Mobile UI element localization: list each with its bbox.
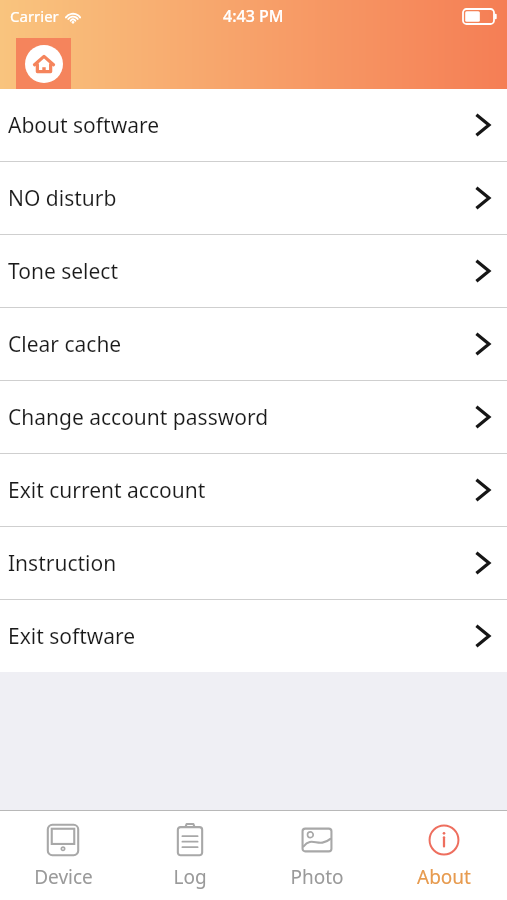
staticText: About — [417, 864, 471, 890]
button[interactable]: Home — [16, 38, 71, 89]
staticText: Clear cache — [8, 330, 122, 359]
button[interactable]: Device — [0, 811, 126, 900]
staticText: Carrier — [10, 6, 59, 26]
staticText: Photo — [290, 864, 344, 890]
staticText: Instruction — [8, 549, 117, 578]
staticText: Log — [173, 864, 207, 890]
button[interactable]: Exit software — [0, 600, 507, 672]
staticText: Exit current account — [8, 476, 206, 505]
button[interactable]: About software — [0, 89, 507, 161]
button[interactable]: NO disturb — [0, 162, 507, 234]
staticText: Device — [34, 864, 93, 890]
staticText: Change account password — [8, 403, 269, 432]
staticText: Tone select — [8, 257, 119, 286]
button[interactable]: Tone select — [0, 235, 507, 307]
staticText: 4:43 PM — [223, 5, 284, 27]
button[interactable]: Log — [126, 811, 253, 900]
button[interactable]: About — [380, 811, 507, 900]
button[interactable]: Exit current account — [0, 454, 507, 526]
button[interactable]: Change account password — [0, 381, 507, 453]
staticText: NO disturb — [8, 184, 117, 213]
button[interactable]: Photo — [253, 811, 380, 900]
button[interactable]: Instruction — [0, 527, 507, 599]
staticText: About software — [8, 111, 160, 140]
button[interactable]: Clear cache — [0, 308, 507, 380]
staticText: Exit software — [8, 622, 136, 651]
